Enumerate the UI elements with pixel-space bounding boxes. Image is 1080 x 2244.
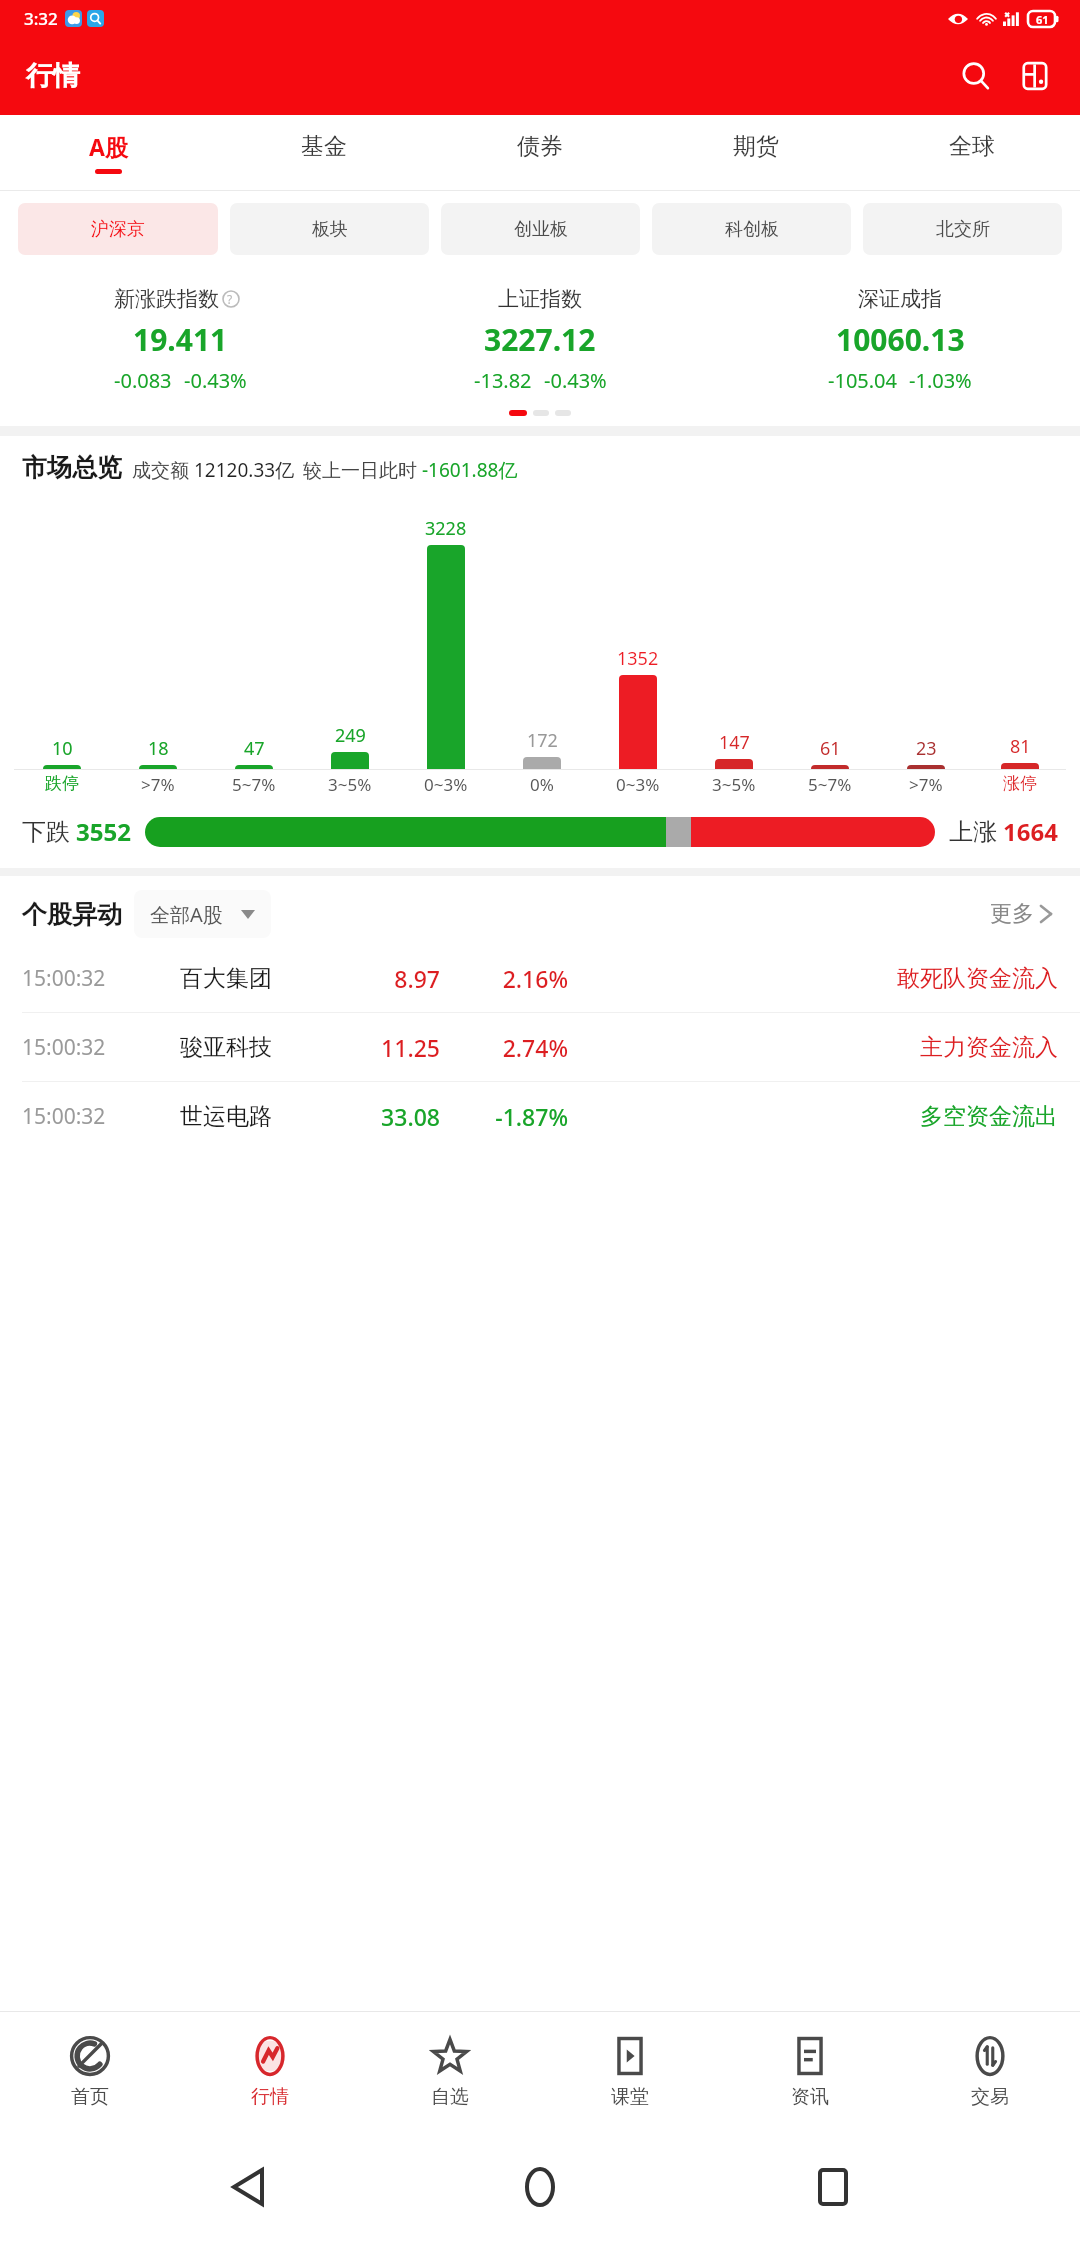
- staticText: 北交所: [936, 218, 990, 241]
- staticText: 市场总览: [22, 452, 122, 483]
- button[interactable]: 15:00:32: [0, 1013, 1080, 1081]
- staticText: 新涨跌指数: [114, 286, 219, 312]
- button[interactable]: 自选: [360, 2012, 540, 2130]
- staticText: 1664: [1003, 815, 1058, 848]
- button[interactable]: 创业板: [441, 203, 640, 255]
- staticText: >7%: [141, 773, 175, 796]
- staticText: 成交额: [132, 459, 189, 483]
- button[interactable]: 板块: [230, 203, 429, 255]
- staticText: 百大集团: [180, 964, 320, 993]
- staticText: 8.97: [330, 963, 440, 994]
- button[interactable]: Search: [954, 54, 998, 98]
- staticText: 3227.12: [484, 319, 596, 360]
- staticText: -1.03%: [909, 367, 972, 394]
- staticText: 世运电路: [180, 1102, 320, 1131]
- staticText: 18: [148, 736, 169, 761]
- staticText: 249: [335, 723, 366, 748]
- staticText: 0%: [530, 773, 554, 796]
- staticText: 涨停: [1003, 773, 1037, 794]
- button[interactable]: 交易: [900, 2012, 1080, 2130]
- staticText: 骏亚科技: [180, 1033, 320, 1062]
- staticText: -0.43%: [544, 367, 607, 394]
- button[interactable]: 15:00:32: [0, 1082, 1080, 1150]
- button[interactable]: 基金: [216, 115, 432, 190]
- staticText: -105.04: [828, 367, 897, 394]
- staticText: 上证指数: [498, 286, 582, 312]
- button[interactable]: 科创板: [652, 203, 851, 255]
- staticText: 全球: [949, 132, 995, 161]
- button[interactable]: A股: [0, 115, 216, 190]
- staticText: 科创板: [725, 218, 779, 241]
- button[interactable]: Recent apps: [788, 2142, 878, 2232]
- staticText: 33.08: [330, 1101, 440, 1132]
- staticText: 资讯: [791, 2085, 829, 2109]
- staticText: 81: [1010, 734, 1031, 759]
- staticText: 23: [916, 736, 937, 761]
- button[interactable]: 全球: [864, 115, 1080, 190]
- staticText: 上涨: [949, 817, 997, 847]
- button[interactable]: 深证成指: [720, 286, 1080, 394]
- staticText: 自选: [431, 2085, 469, 2109]
- button[interactable]: 债券: [432, 115, 648, 190]
- staticText: -0.083: [114, 367, 172, 394]
- button[interactable]: 行情: [180, 2012, 360, 2130]
- staticText: 3228: [425, 516, 467, 541]
- staticText: -1.87%: [458, 1101, 568, 1132]
- staticText: 19.411: [133, 319, 228, 360]
- staticText: 期货: [733, 132, 779, 161]
- staticText: 行情: [251, 2085, 289, 2109]
- button[interactable]: 资讯: [720, 2012, 900, 2130]
- button[interactable]: Home: [495, 2142, 585, 2232]
- staticText: 15:00:32: [22, 1033, 172, 1062]
- staticText: 10: [52, 736, 73, 761]
- button[interactable]: 15:00:32: [0, 944, 1080, 1012]
- staticText: 12120.33亿: [194, 457, 295, 483]
- staticText: ?: [227, 291, 233, 307]
- staticText: A股: [89, 131, 128, 162]
- staticText: -1601.88亿: [422, 457, 518, 483]
- staticText: 深证成指: [858, 286, 942, 312]
- button[interactable]: 首页: [0, 2012, 180, 2130]
- staticText: 创业板: [514, 218, 568, 241]
- staticText: 课堂: [611, 2085, 649, 2109]
- staticText: 首页: [71, 2085, 109, 2109]
- staticText: 3:32: [24, 7, 58, 30]
- staticText: 沪深京: [91, 218, 145, 241]
- staticText: 跌停: [45, 773, 79, 794]
- staticText: 1352: [617, 646, 659, 671]
- staticText: 3552: [76, 815, 131, 848]
- button[interactable]: 课堂: [540, 2012, 720, 2130]
- staticText: 2.16%: [458, 963, 568, 994]
- staticText: 3~5%: [712, 773, 756, 796]
- staticText: 更多: [990, 900, 1034, 928]
- staticText: 主力资金流入: [920, 1033, 1058, 1062]
- staticText: 10060.13: [836, 319, 965, 360]
- staticText: 15:00:32: [22, 1102, 172, 1131]
- staticText: 5~7%: [232, 773, 276, 796]
- staticText: 61: [820, 736, 841, 761]
- button[interactable]: 全部A股: [134, 890, 271, 938]
- staticText: 敢死队资金流入: [897, 964, 1058, 993]
- staticText: 5~7%: [808, 773, 852, 796]
- button[interactable]: 新涨跌指数: [0, 286, 360, 394]
- button[interactable]: Scan QR code: [1012, 54, 1056, 98]
- staticText: 61: [1036, 12, 1049, 27]
- button[interactable]: 更多: [984, 894, 1058, 934]
- button[interactable]: 北交所: [863, 203, 1062, 255]
- button[interactable]: 期货: [648, 115, 864, 190]
- button[interactable]: Back: [203, 2142, 293, 2232]
- staticText: 下跌: [22, 817, 70, 847]
- staticText: 2.74%: [458, 1032, 568, 1063]
- staticText: >7%: [909, 773, 943, 796]
- button[interactable]: 上证指数: [360, 286, 720, 394]
- staticText: 个股异动: [22, 899, 122, 930]
- staticText: 11.25: [330, 1032, 440, 1063]
- staticText: 147: [719, 730, 750, 755]
- button[interactable]: 沪深京: [18, 203, 218, 255]
- staticText: 基金: [301, 132, 347, 161]
- staticText: 板块: [312, 218, 348, 241]
- staticText: 多空资金流出: [920, 1102, 1058, 1131]
- staticText: 172: [527, 728, 558, 753]
- staticText: 债券: [517, 132, 563, 161]
- staticText: 全部A股: [150, 901, 223, 928]
